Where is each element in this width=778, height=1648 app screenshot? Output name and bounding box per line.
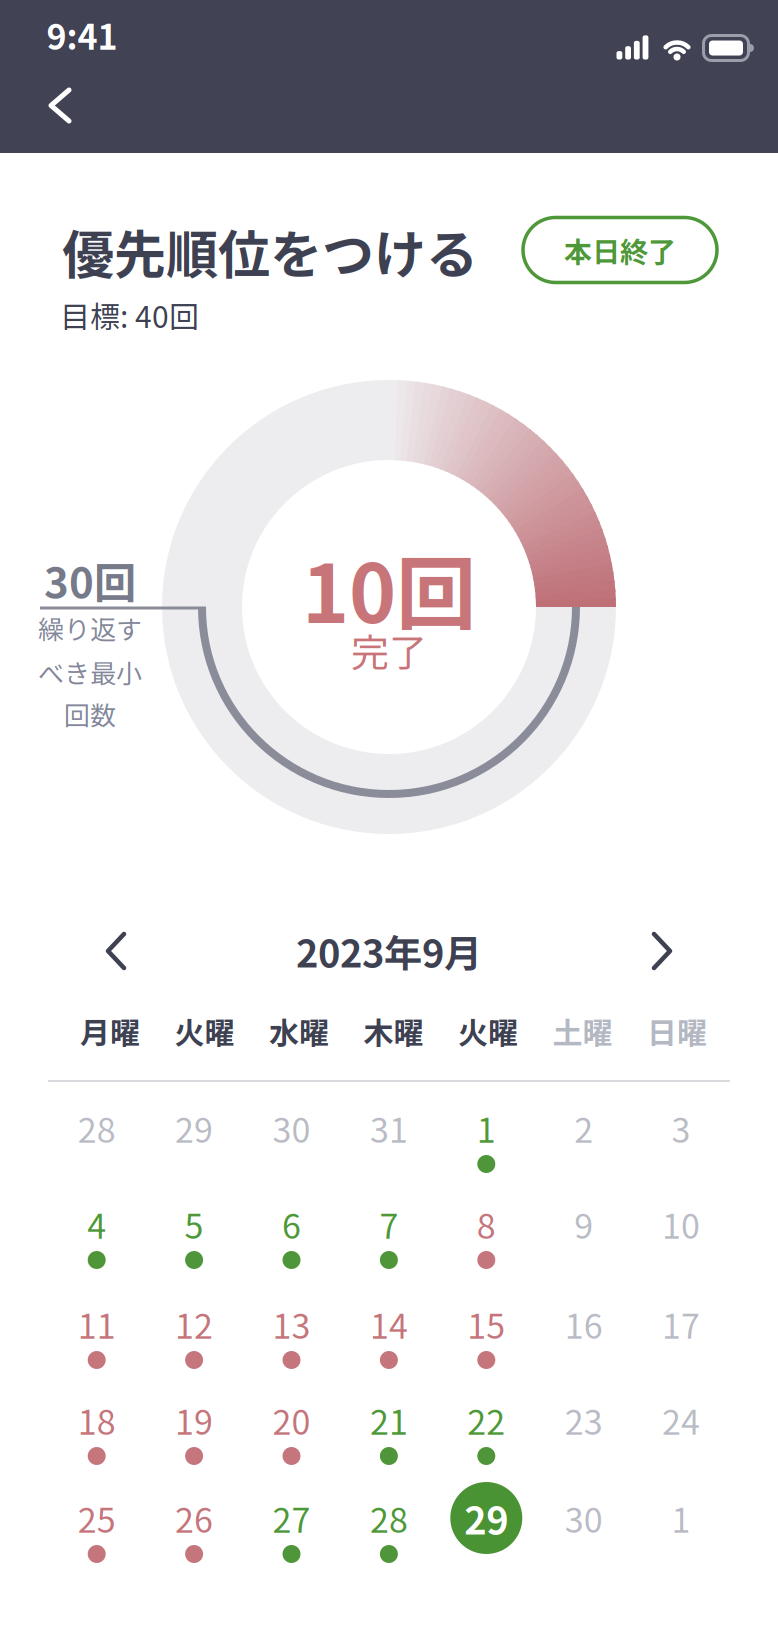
button[interactable]: 9	[574, 1199, 593, 1249]
staticText: 24	[662, 1395, 700, 1445]
staticText: 繰り返す	[38, 609, 142, 647]
staticText: 8	[477, 1199, 496, 1249]
staticText: 回数	[64, 695, 116, 733]
staticText: 6	[282, 1199, 301, 1249]
staticText: 25	[78, 1493, 116, 1543]
staticText: 10	[662, 1199, 700, 1249]
staticText: 日曜	[647, 1009, 707, 1053]
button[interactable]: 19	[175, 1395, 213, 1445]
button[interactable]: 28	[78, 1103, 116, 1153]
button[interactable]: 8	[477, 1199, 496, 1249]
staticText: 優先順位をつける	[62, 213, 478, 289]
button[interactable]: 25	[78, 1493, 116, 1543]
button[interactable]: 28	[370, 1493, 408, 1543]
staticText: 13	[272, 1299, 310, 1349]
staticText: 29	[464, 1490, 508, 1545]
button[interactable]: 24	[662, 1395, 700, 1445]
button[interactable]: 31	[370, 1103, 408, 1153]
staticText: 3	[672, 1103, 691, 1153]
staticText: 17	[662, 1299, 700, 1349]
button[interactable]: 16	[565, 1299, 603, 1349]
staticText: 2	[574, 1103, 593, 1153]
staticText: 28	[78, 1103, 116, 1153]
staticText: べき最小	[38, 653, 142, 691]
button[interactable]: Back	[47, 87, 72, 123]
staticText: 27	[272, 1493, 310, 1543]
button[interactable]: 13	[272, 1299, 310, 1349]
button[interactable]: 12	[175, 1299, 213, 1349]
staticText: 1	[477, 1103, 496, 1153]
staticText: 30回	[44, 550, 136, 610]
staticText: 21	[370, 1395, 408, 1445]
button[interactable]: 26	[175, 1493, 213, 1543]
button[interactable]: 3	[672, 1103, 691, 1153]
button[interactable]: 1	[672, 1493, 691, 1543]
staticText: 4	[87, 1199, 106, 1249]
staticText: 29	[175, 1103, 213, 1153]
staticText: 7	[379, 1199, 398, 1249]
button[interactable]: 30	[272, 1103, 310, 1153]
staticText: 18	[78, 1395, 116, 1445]
staticText: 30	[272, 1103, 310, 1153]
staticText: 22	[467, 1395, 505, 1445]
staticText: 28	[370, 1493, 408, 1543]
staticText: 月曜	[80, 1009, 140, 1053]
staticText: 15	[467, 1299, 505, 1349]
button[interactable]: 18	[78, 1395, 116, 1445]
button[interactable]: 15	[467, 1299, 505, 1349]
button[interactable]: 14	[370, 1299, 408, 1349]
staticText: 火曜	[458, 1009, 518, 1053]
staticText: 1	[672, 1493, 691, 1543]
button[interactable]: 17	[662, 1299, 700, 1349]
staticText: 火曜	[174, 1009, 234, 1053]
staticText: 5	[185, 1199, 204, 1249]
button[interactable]: 30	[565, 1493, 603, 1543]
staticText: 11	[78, 1299, 116, 1349]
staticText: 本日終了	[564, 230, 676, 270]
staticText: 31	[370, 1103, 408, 1153]
staticText: 完了	[351, 622, 427, 677]
staticText: 水曜	[269, 1009, 329, 1053]
staticText: 26	[175, 1493, 213, 1543]
button[interactable]: 6	[282, 1199, 301, 1249]
staticText: 土曜	[552, 1009, 612, 1053]
staticText: 9:41	[46, 10, 117, 60]
button[interactable]: 29	[175, 1103, 213, 1153]
button[interactable]: 20	[272, 1395, 310, 1445]
staticText: 目標: 40回	[60, 293, 199, 337]
staticText: 10回	[302, 530, 476, 646]
button[interactable]: 21	[370, 1395, 408, 1445]
button[interactable]: 22	[467, 1395, 505, 1445]
button[interactable]: 23	[565, 1395, 603, 1445]
button[interactable]: 5	[185, 1199, 204, 1249]
staticText: 12	[175, 1299, 213, 1349]
button[interactable]: 7	[379, 1199, 398, 1249]
button[interactable]: 2	[574, 1103, 593, 1153]
button[interactable]: 本日終了	[523, 217, 717, 282]
button[interactable]: Next month	[651, 931, 672, 970]
button[interactable]: 11	[78, 1299, 116, 1349]
staticText: 2023年9月	[296, 923, 482, 978]
staticText: 16	[565, 1299, 603, 1349]
button[interactable]: Previous month	[105, 931, 126, 970]
button[interactable]: 27	[272, 1493, 310, 1543]
button[interactable]: 4	[87, 1199, 106, 1249]
staticText: 9	[574, 1199, 593, 1249]
staticText: 23	[565, 1395, 603, 1445]
staticText: 木曜	[363, 1009, 423, 1053]
button[interactable]: 10	[662, 1199, 700, 1249]
staticText: 14	[370, 1299, 408, 1349]
button[interactable]: 29	[450, 1482, 522, 1554]
staticText: 30	[565, 1493, 603, 1543]
button[interactable]: 1	[477, 1103, 496, 1153]
staticText: 19	[175, 1395, 213, 1445]
staticText: 20	[272, 1395, 310, 1445]
